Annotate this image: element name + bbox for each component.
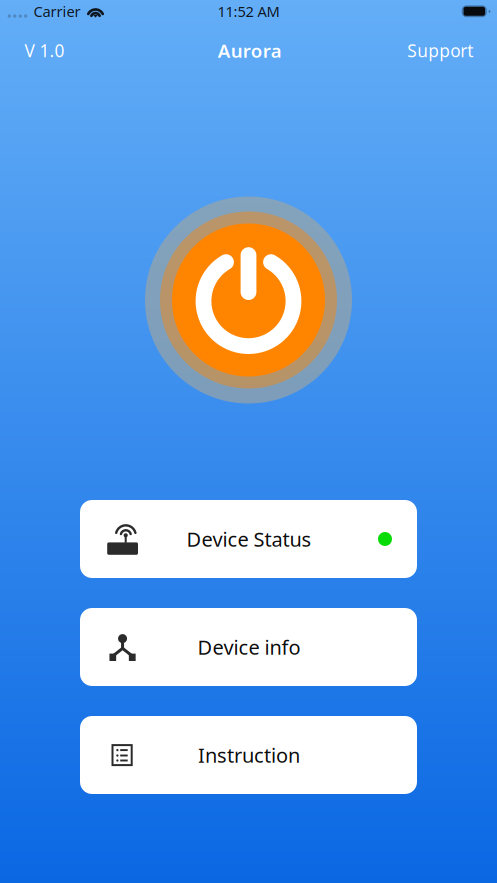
staticText: Device Status: [186, 526, 311, 552]
button[interactable]: Device Status: [80, 500, 417, 578]
staticText: 11:52 AM: [217, 2, 279, 21]
button[interactable]: Device info: [80, 608, 417, 686]
button[interactable]: Power: [145, 196, 352, 403]
staticText: Instruction: [198, 742, 300, 768]
staticText: V 1.0: [25, 39, 65, 62]
button[interactable]: V 1.0: [15, 31, 75, 70]
staticText: Carrier: [33, 2, 80, 21]
button[interactable]: Support: [397, 31, 483, 70]
staticText: Support: [407, 39, 473, 62]
staticText: Aurora: [218, 38, 282, 63]
button[interactable]: Instruction: [80, 716, 417, 794]
staticText: Device info: [197, 634, 300, 660]
